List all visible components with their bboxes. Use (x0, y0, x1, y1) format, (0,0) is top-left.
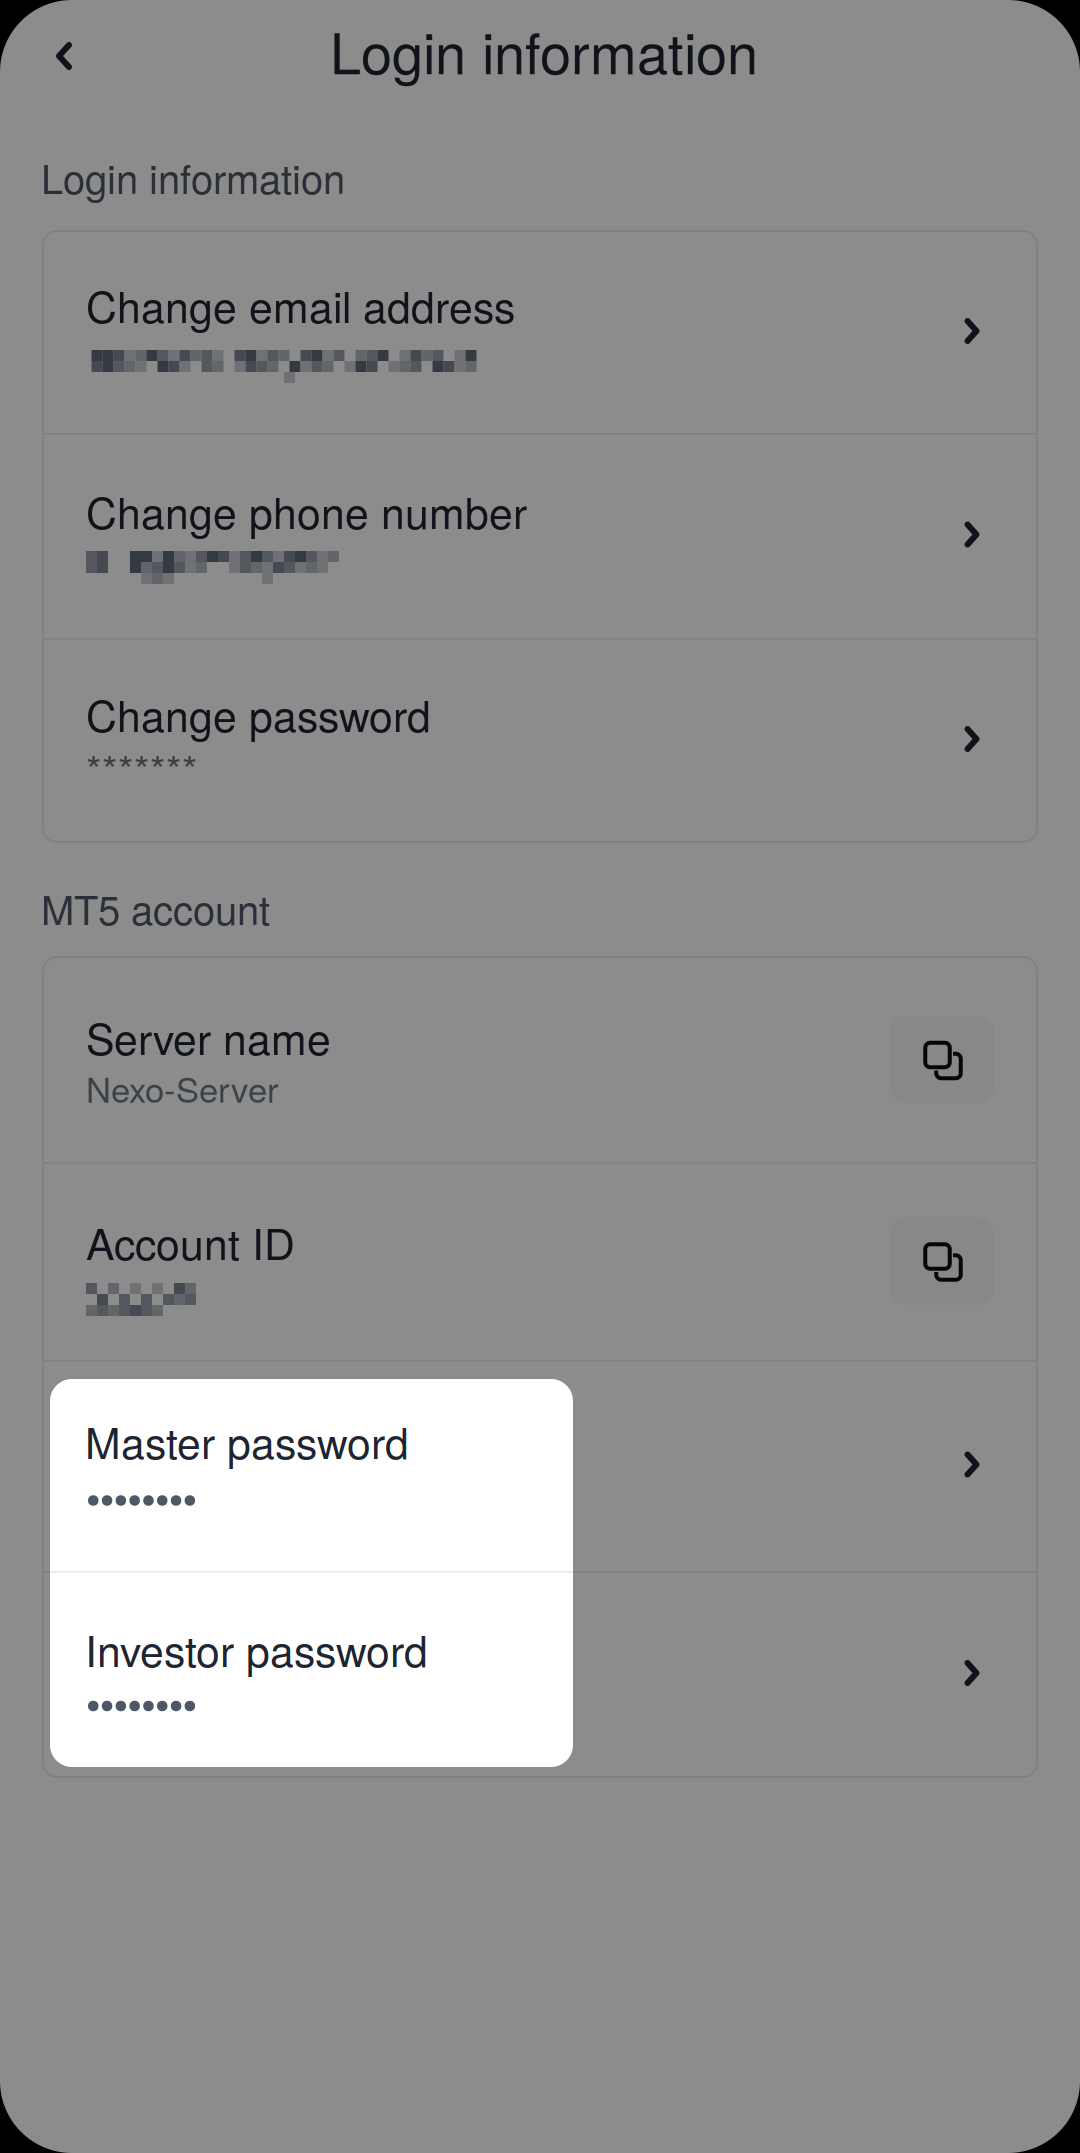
button[interactable]: Change password (43, 638, 1037, 842)
staticText: MT5 account (41, 879, 270, 936)
staticText: Investor password (86, 1618, 429, 1679)
staticText: Investor password (85, 1618, 428, 1679)
button[interactable]: Copy Account ID (890, 1217, 994, 1305)
staticText: Change email address (86, 274, 515, 335)
button[interactable]: Master password (43, 1360, 1037, 1571)
staticText: Nexo-Server (86, 1063, 279, 1113)
staticText: Change phone number (86, 480, 527, 541)
button[interactable]: Change phone number (43, 433, 1037, 638)
staticText: Master password (86, 1410, 410, 1471)
button[interactable]: Investor password (43, 1571, 1037, 1777)
button[interactable]: Investor password (50, 1573, 573, 1769)
button[interactable]: Master password (50, 1379, 573, 1571)
button[interactable]: Copy Server name (890, 1015, 994, 1103)
button[interactable]: Back (12, 0, 116, 112)
staticText: Login information (41, 148, 345, 205)
staticText: ******* (86, 739, 198, 796)
staticText: Account ID (86, 1211, 295, 1272)
button[interactable]: Change email address (43, 231, 1037, 433)
staticText: Change password (86, 683, 431, 744)
staticText: Master password (85, 1410, 409, 1471)
staticText: Login information (330, 10, 758, 90)
staticText: Server name (86, 1006, 331, 1067)
